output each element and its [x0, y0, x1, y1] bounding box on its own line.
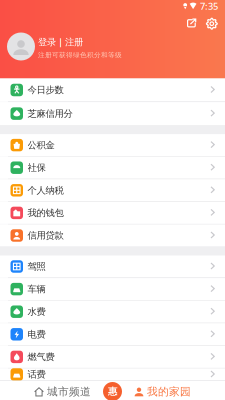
staticText: 话费 — [27, 369, 45, 380]
staticText: 水费 — [27, 306, 45, 317]
button[interactable]: 电费 — [0, 323, 225, 345]
staticText: 公积金 — [27, 139, 54, 151]
button[interactable]: Settings — [204, 15, 220, 32]
button[interactable]: 今日步数 — [0, 78, 225, 101]
button[interactable]: 我的家园 — [112, 381, 212, 400]
button[interactable]: 公积金 — [0, 134, 225, 156]
staticText: 城市频道 — [47, 385, 91, 398]
staticText: 车辆 — [27, 283, 45, 295]
button[interactable]: 燃气费 — [0, 346, 225, 368]
button[interactable]: 社保 — [0, 157, 225, 179]
button[interactable]: 我的钱包 — [0, 202, 225, 224]
staticText: 信用贷款 — [27, 230, 63, 241]
button[interactable]: 个人纳税 — [0, 179, 225, 201]
staticText: 电费 — [27, 329, 45, 340]
staticText: 惠 — [108, 386, 117, 397]
button[interactable]: 驾照 — [0, 255, 225, 277]
staticText: 我的家园 — [147, 385, 191, 398]
staticText: 今日步数 — [27, 84, 63, 96]
button[interactable]: 信用贷款 — [0, 224, 225, 246]
staticText: 注册可获得绿色积分和等级 — [38, 51, 122, 59]
button[interactable]: 话费 — [0, 368, 225, 380]
staticText: 社保 — [27, 162, 45, 173]
button[interactable]: 登录 | 注册 — [0, 32, 225, 64]
staticText: 登录 | 注册 — [38, 35, 83, 48]
button[interactable]: Offers — [102, 381, 122, 400]
staticText: 驾照 — [27, 261, 45, 272]
staticText: 芝麻信用分 — [27, 108, 72, 119]
staticText: 7:35 — [200, 0, 218, 12]
button[interactable]: 城市频道 — [12, 381, 112, 400]
button[interactable]: 水费 — [0, 301, 225, 323]
staticText: 我的钱包 — [27, 207, 63, 219]
button[interactable]: Share — [185, 17, 200, 31]
button[interactable]: 车辆 — [0, 278, 225, 300]
button[interactable]: 芝麻信用分 — [0, 102, 225, 125]
staticText: 燃气费 — [27, 351, 54, 363]
staticText: 个人纳税 — [27, 185, 63, 196]
